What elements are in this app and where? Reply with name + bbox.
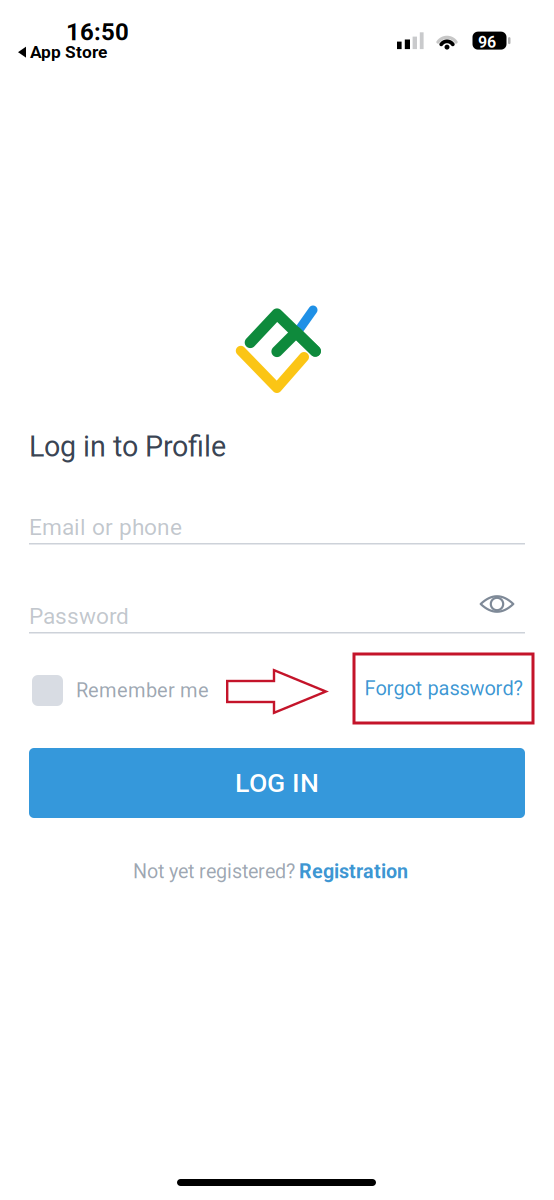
staticText: Log in to Profile <box>29 430 226 464</box>
staticText: LOG IN <box>235 767 319 799</box>
staticText: Remember me <box>76 679 209 702</box>
button[interactable]: LOG IN <box>29 748 525 818</box>
staticText: App Store <box>30 42 107 62</box>
staticText: Registration <box>299 860 408 883</box>
button[interactable]: Remember me <box>24 668 209 713</box>
button[interactable]: Forgot password? <box>354 654 533 723</box>
staticText: Password <box>29 603 129 630</box>
staticText: 96 <box>478 33 496 52</box>
button[interactable]: Show password <box>472 584 522 624</box>
staticText: 16:50 <box>66 18 129 46</box>
staticText: Email or phone <box>29 514 182 541</box>
staticText: Not yet registered? <box>133 860 299 883</box>
staticText: Forgot password? <box>364 677 522 700</box>
button[interactable]: Registration <box>299 860 408 883</box>
